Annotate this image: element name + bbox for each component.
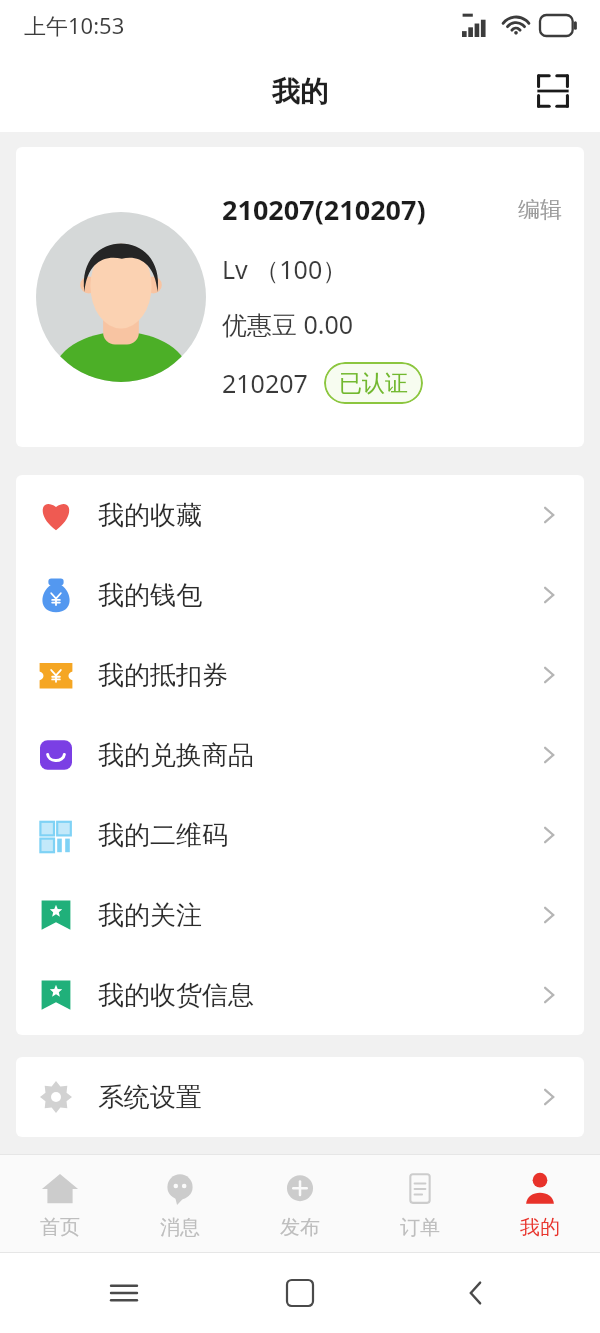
staticText: 我的关注 — [98, 899, 536, 932]
button[interactable]: 订单 — [360, 1155, 480, 1252]
staticText: 首页 — [40, 1215, 80, 1240]
staticText: 我的二维码 — [98, 819, 536, 852]
button[interactable]: 我的关注 — [16, 875, 584, 955]
button[interactable]: 我的 — [480, 1155, 600, 1252]
button[interactable]: 消息 — [120, 1155, 240, 1252]
button[interactable]: Recents — [100, 1269, 148, 1317]
staticText: Lv （100） — [222, 252, 348, 286]
button[interactable]: 我的收货信息 — [16, 955, 584, 1035]
button[interactable]: 我的兑换商品 — [16, 715, 584, 795]
staticText: 订单 — [400, 1215, 440, 1240]
staticText: 我的 — [520, 1215, 560, 1240]
staticText: 我的抵扣券 — [98, 659, 536, 692]
button[interactable]: 我的收藏 — [16, 475, 584, 555]
staticText: 编辑 — [518, 196, 562, 224]
staticText: 我的兑换商品 — [98, 739, 536, 772]
button[interactable]: 210207(210207) — [16, 147, 584, 447]
button[interactable]: 编辑 — [514, 192, 566, 228]
staticText: 我的收藏 — [98, 499, 536, 532]
staticText: 上午10:53 — [24, 10, 125, 40]
button[interactable]: 我的抵扣券 — [16, 635, 584, 715]
staticText: 210207(210207) — [222, 191, 514, 228]
staticText: 我的钱包 — [98, 579, 536, 612]
staticText: 210207 — [222, 366, 308, 400]
button[interactable]: 已认证 — [324, 362, 423, 404]
staticText: 优惠豆 0.00 — [222, 307, 354, 341]
button[interactable]: 首页 — [0, 1155, 120, 1252]
staticText: 发布 — [280, 1215, 320, 1240]
staticText: 我的收货信息 — [98, 979, 536, 1012]
button[interactable]: 发布 — [240, 1155, 360, 1252]
staticText: 系统设置 — [98, 1081, 536, 1114]
staticText: 已认证 — [339, 369, 408, 398]
button[interactable]: Home — [276, 1269, 324, 1317]
staticText: 我的 — [272, 74, 328, 109]
button[interactable]: 系统设置 — [16, 1057, 584, 1137]
staticText: 消息 — [160, 1215, 200, 1240]
button[interactable]: 我的二维码 — [16, 795, 584, 875]
button[interactable]: 我的钱包 — [16, 555, 584, 635]
button[interactable]: Scan QR code — [528, 66, 578, 116]
button[interactable]: Back — [452, 1269, 500, 1317]
